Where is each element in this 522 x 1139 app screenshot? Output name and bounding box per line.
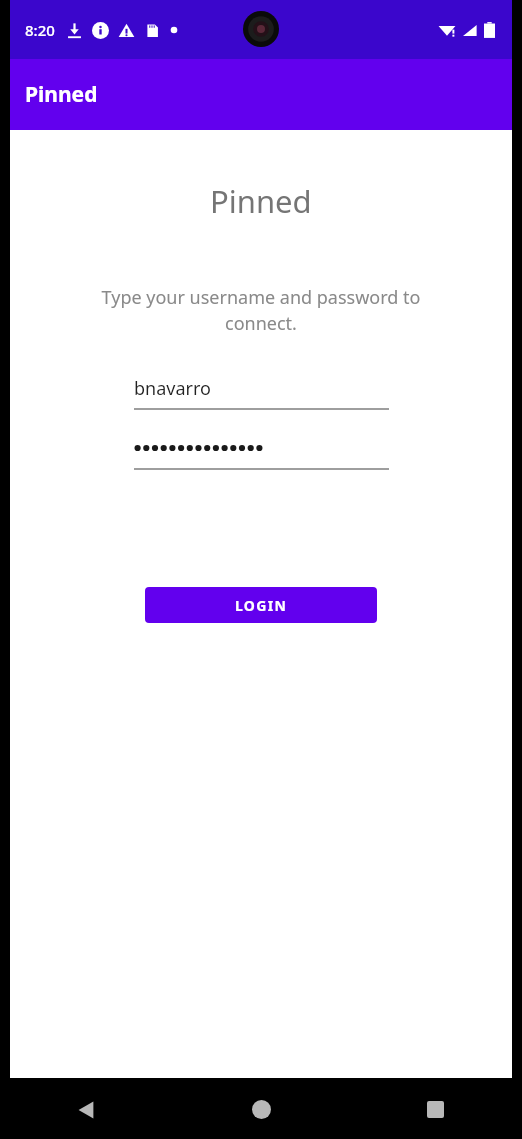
staticText: Type your username and password to conne… [66,285,456,336]
button[interactable] [134,435,389,470]
button[interactable]: bnavarro [134,376,389,410]
button[interactable]: Back [0,1080,174,1139]
staticText: bnavarro [134,376,211,401]
staticText: Pinned [210,180,312,222]
button[interactable]: LOGIN [145,587,377,623]
staticText: 8:20 [25,20,55,40]
button[interactable]: Home [174,1080,348,1139]
button[interactable]: Recent apps [348,1080,522,1139]
staticText: Pinned [25,80,98,109]
staticText: LOGIN [235,596,288,615]
